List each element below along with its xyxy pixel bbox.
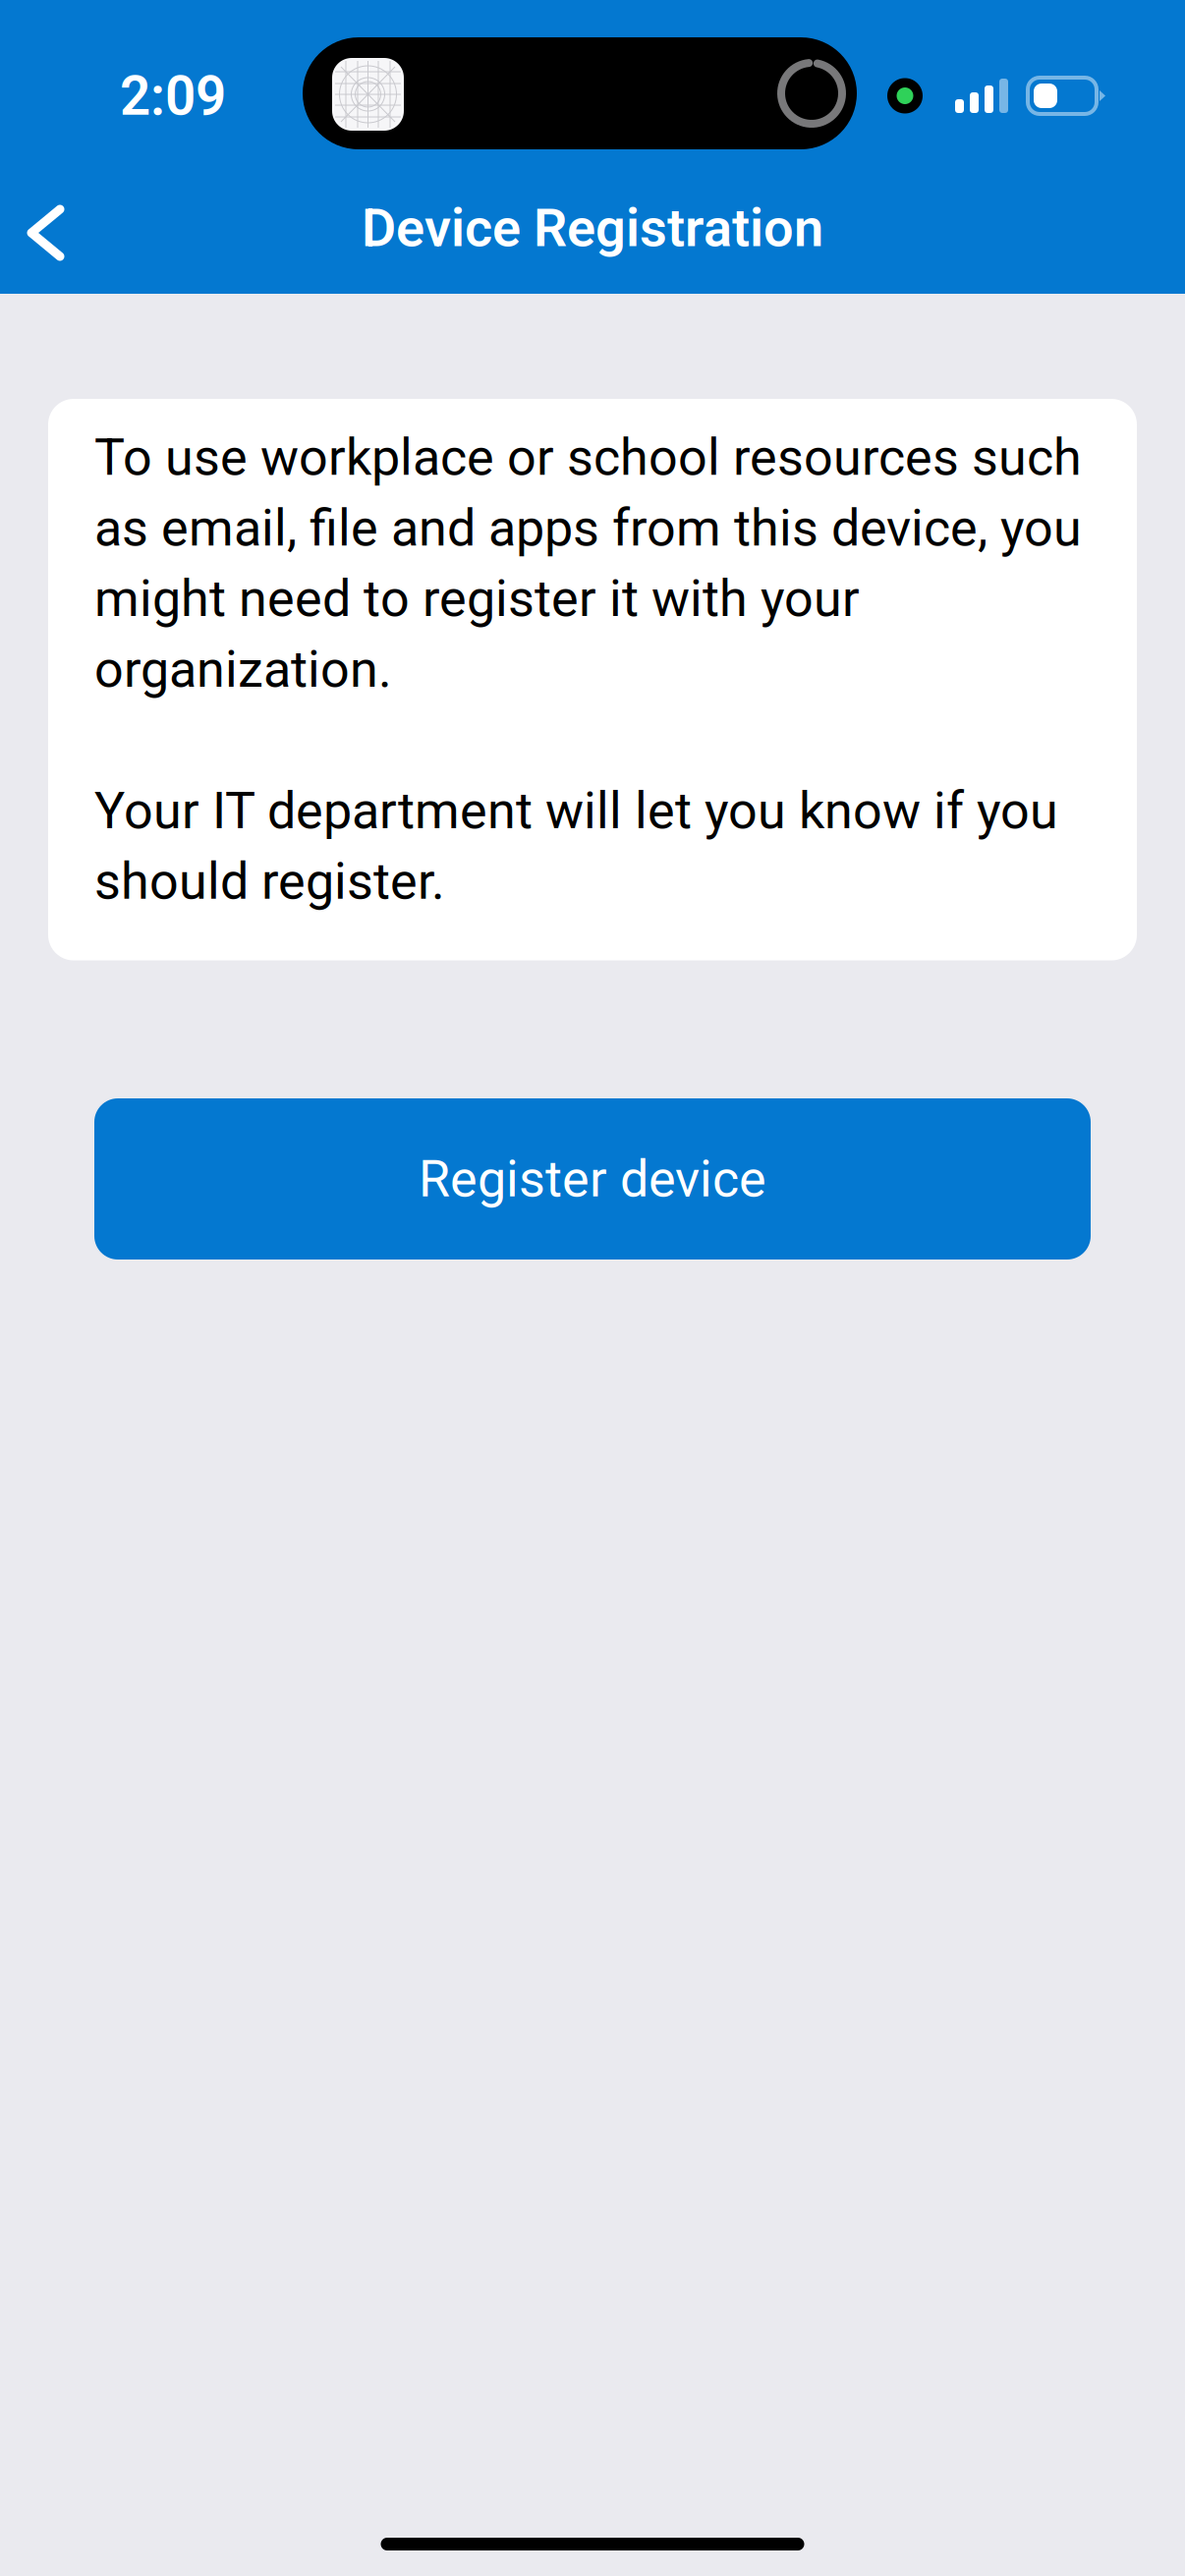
staticText: To use workplace or school resources suc… bbox=[94, 427, 1082, 911]
staticText: 2:09 bbox=[120, 65, 226, 128]
staticText: Device Registration bbox=[362, 197, 823, 259]
button[interactable]: Register device bbox=[94, 1098, 1091, 1260]
button[interactable]: Back bbox=[0, 172, 91, 294]
staticText: Register device bbox=[419, 1149, 766, 1209]
